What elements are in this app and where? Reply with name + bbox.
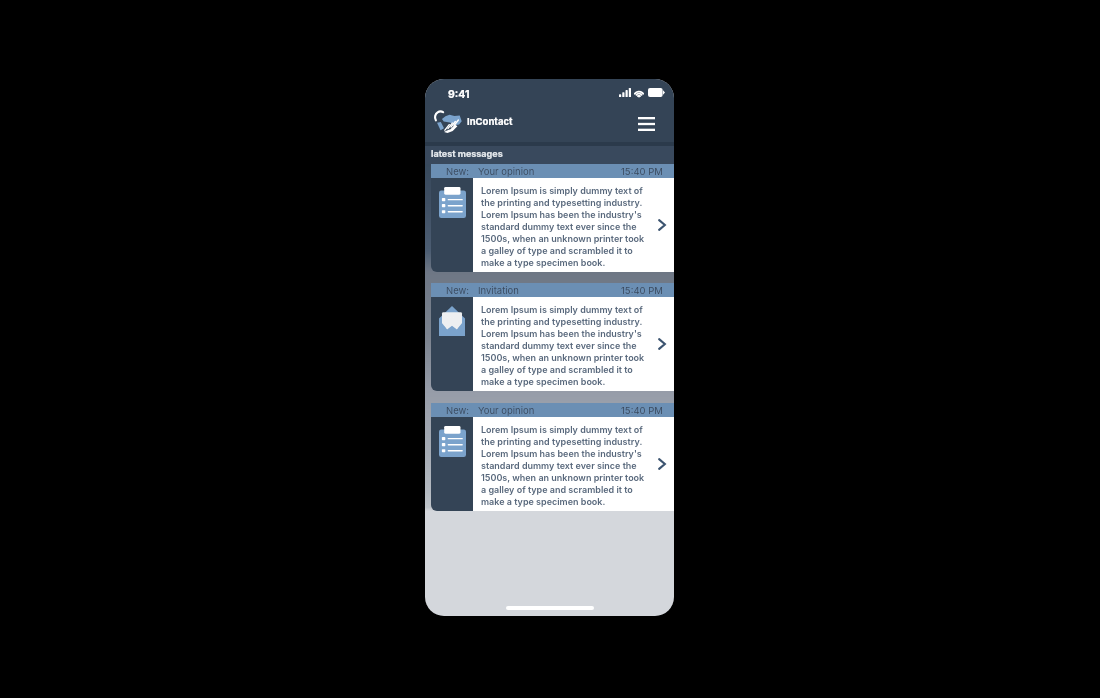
staticText: New: xyxy=(446,405,470,416)
staticText: latest messages xyxy=(431,148,503,159)
staticText: Invitation xyxy=(478,285,519,296)
staticText: New: xyxy=(446,285,470,296)
staticText: Lorem Ipsum is simply dummy text of the … xyxy=(481,185,648,268)
button[interactable]: Menu xyxy=(633,111,659,137)
staticText: 9:41 xyxy=(448,88,470,101)
staticText: InContact xyxy=(467,116,513,127)
button[interactable]: New: xyxy=(431,164,674,272)
staticText: 15:40 PM xyxy=(621,405,663,416)
staticText: Lorem Ipsum is simply dummy text of the … xyxy=(481,424,648,507)
button[interactable]: New: xyxy=(431,283,674,391)
staticText: 15:40 PM xyxy=(621,166,663,177)
staticText: Your opinion xyxy=(478,405,535,416)
staticText: 15:40 PM xyxy=(621,285,663,296)
staticText: Your opinion xyxy=(478,166,535,177)
staticText: Lorem Ipsum is simply dummy text of the … xyxy=(481,304,648,387)
staticText: New: xyxy=(446,166,470,177)
button[interactable]: New: xyxy=(431,403,674,511)
